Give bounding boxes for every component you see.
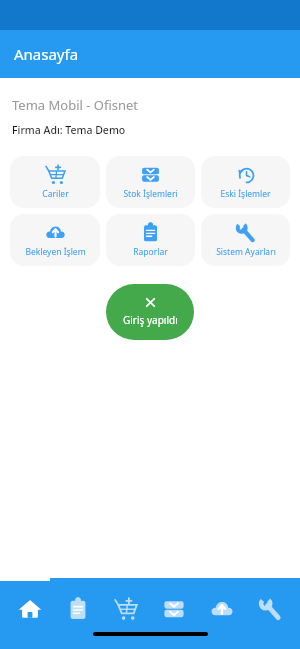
button[interactable]: Home bbox=[12, 591, 48, 627]
staticText: Stok İşlemleri bbox=[123, 188, 178, 200]
staticText: Tema Mobil - Ofisnet bbox=[12, 96, 139, 114]
button[interactable]: Raporlar bbox=[106, 214, 195, 266]
button[interactable]: Settings bbox=[252, 591, 288, 627]
staticText: Bekleyen İşlem bbox=[25, 246, 86, 258]
staticText: Sistem Ayarları bbox=[216, 246, 276, 258]
button[interactable]: Cariler bbox=[10, 156, 100, 208]
button[interactable]: Cart bbox=[108, 591, 144, 627]
staticText: Eski İşlemler bbox=[220, 188, 271, 200]
button[interactable]: Stok İşlemleri bbox=[106, 156, 195, 208]
staticText: Cariler bbox=[42, 188, 69, 200]
button[interactable]: Eski İşlemler bbox=[201, 156, 290, 208]
staticText: Firma Adı: Tema Demo bbox=[12, 123, 126, 137]
button[interactable]: Stock bbox=[156, 591, 192, 627]
staticText: Anasayfa bbox=[14, 44, 79, 64]
staticText: Raporlar bbox=[133, 246, 168, 258]
staticText: Giriş yapıldı bbox=[123, 313, 178, 327]
button[interactable]: Bekleyen İşlem bbox=[10, 214, 100, 266]
button[interactable]: Reports bbox=[60, 591, 96, 627]
button[interactable]: Pending bbox=[204, 591, 240, 627]
button[interactable]: Giriş yapıldı bbox=[106, 284, 194, 340]
button[interactable]: Sistem Ayarları bbox=[201, 214, 290, 266]
